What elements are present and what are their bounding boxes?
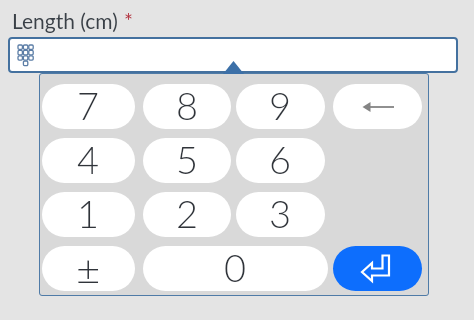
button[interactable]: 1	[42, 192, 135, 237]
button[interactable]: ±	[42, 246, 135, 291]
button[interactable]: 9	[236, 84, 325, 129]
staticText: 8	[176, 82, 199, 127]
button[interactable]: 0	[143, 246, 328, 291]
button[interactable]	[333, 246, 422, 291]
staticText: 6	[269, 136, 292, 181]
button[interactable]	[333, 84, 422, 129]
staticText: 5	[176, 136, 199, 181]
button[interactable]: 3	[236, 192, 325, 237]
button[interactable]	[8, 37, 458, 73]
staticText: 4	[77, 136, 100, 181]
staticText: 9	[269, 82, 292, 127]
staticText: 0	[224, 244, 247, 289]
staticText: 2	[176, 190, 199, 235]
staticText: *	[124, 8, 133, 33]
staticText: 7	[77, 82, 100, 127]
button[interactable]: 6	[236, 138, 325, 183]
button[interactable]: 8	[143, 84, 231, 129]
button[interactable]: 7	[42, 84, 135, 129]
staticText: 1	[77, 190, 100, 235]
button[interactable]: 2	[143, 192, 231, 237]
staticText: 3	[269, 190, 292, 235]
staticText: ±	[76, 244, 101, 289]
button[interactable]: 5	[143, 138, 231, 183]
staticText: Length (cm)	[12, 8, 124, 33]
button[interactable]: 4	[42, 138, 135, 183]
